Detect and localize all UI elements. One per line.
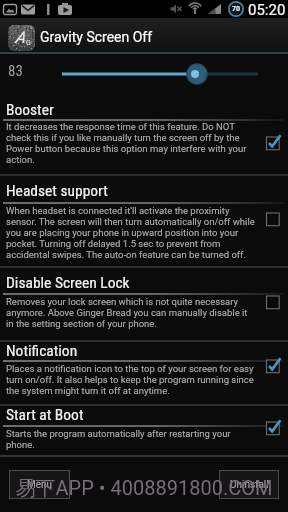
staticText: Gravity Screen Off [40,29,153,45]
staticText: 70 [230,5,242,13]
staticText: When headset is connected it'll activate… [6,205,258,260]
staticText: Removes your lock screen which is not qu… [6,296,258,329]
staticText: G [26,39,31,47]
staticText: Notification [6,342,78,360]
staticText: Disable Screen Lock [6,274,130,292]
staticText: A [15,28,26,47]
button[interactable]: Menu [9,470,70,499]
staticText: It decreases the response time of this f… [6,121,258,165]
staticText: Headset support [6,182,108,200]
button[interactable]: Places a notification icon to the top of… [0,363,288,396]
staticText: Menu [27,479,53,491]
button[interactable]: Uninstall [219,470,279,499]
staticText: 83 [8,62,23,80]
button[interactable]: It decreases the response time of this f… [0,121,288,165]
button[interactable]: Starts the program automatically after r… [0,428,288,450]
staticText: Places a notification icon to the top of… [6,363,258,396]
staticText: 易下APP • 4008891800.COM [0,476,288,501]
staticText: Start at Boot [6,406,84,424]
staticText: Booster [6,101,54,119]
button[interactable]: Removes your lock screen which is not qu… [0,296,288,329]
staticText: 05:20 [248,1,286,19]
staticText: Starts the program automatically after r… [6,428,258,450]
staticText: Uninstall [230,479,269,491]
button[interactable]: When headset is connected it'll activate… [0,205,288,260]
button[interactable]: 83 [0,56,288,92]
